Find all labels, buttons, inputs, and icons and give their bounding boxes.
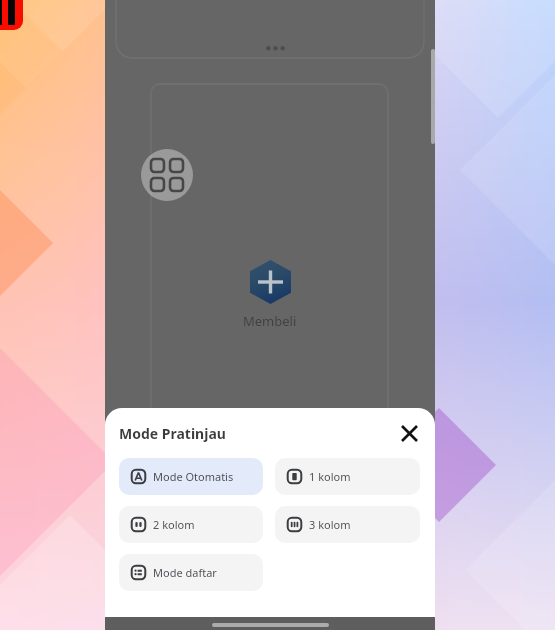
staticText: Membeli [243, 312, 297, 330]
button[interactable]: Mode Otomatis [119, 458, 263, 495]
button[interactable]: Close [392, 416, 426, 450]
staticText: Mode Otomatis [153, 469, 234, 484]
staticText: 2 kolom [153, 517, 195, 532]
button[interactable]: Mode daftar [119, 554, 263, 591]
staticText: Mode Pratinjau [119, 424, 226, 443]
button[interactable]: Apps [141, 149, 193, 201]
staticText: 3 kolom [309, 517, 351, 532]
staticText: Mode daftar [153, 565, 217, 580]
staticText: 1 kolom [309, 469, 351, 484]
button[interactable]: Membeli [239, 260, 301, 330]
button[interactable]: 3 kolom [275, 506, 420, 543]
button[interactable]: 2 kolom [119, 506, 263, 543]
button[interactable]: 1 kolom [275, 458, 420, 495]
